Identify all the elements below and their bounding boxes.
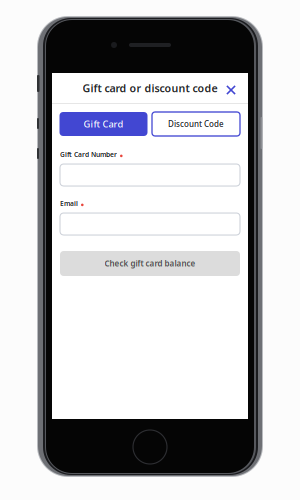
staticText: Check gift card balance — [104, 258, 195, 269]
staticText: Email — [60, 199, 78, 208]
button[interactable]: Close — [220, 79, 242, 101]
button[interactable]: Check gift card balance — [60, 251, 240, 276]
staticText: Gift Card Number — [60, 150, 117, 159]
staticText: Discount Code — [168, 119, 224, 129]
staticText: Gift Card — [83, 118, 123, 130]
staticText: Gift card or discount code — [82, 81, 217, 95]
button[interactable]: Gift Card — [59, 112, 147, 136]
button[interactable]: Discount Code — [152, 112, 240, 136]
